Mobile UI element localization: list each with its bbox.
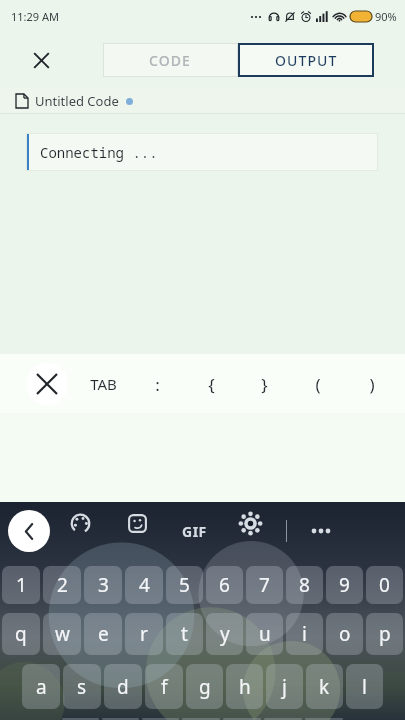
button[interactable]: Untitled Code <box>16 92 133 110</box>
button[interactable]: Themes <box>59 502 101 544</box>
staticText: a <box>36 674 47 700</box>
staticText: Untitled Code <box>35 92 119 110</box>
button[interactable]: ( <box>296 362 340 406</box>
button[interactable]: } <box>242 362 286 406</box>
staticText: q <box>15 621 27 647</box>
staticText: d <box>117 674 129 700</box>
staticText: GIF <box>182 522 207 541</box>
button[interactable]: i <box>286 613 323 655</box>
staticText: 1 <box>16 572 27 598</box>
staticText: TAB <box>90 374 117 394</box>
button[interactable]: u <box>246 613 283 655</box>
staticText: u <box>259 621 271 647</box>
staticText: f <box>161 674 168 700</box>
button[interactable]: GIF <box>173 510 215 552</box>
staticText: i <box>302 621 307 647</box>
staticText: ) <box>369 373 375 396</box>
staticText: p <box>379 621 391 647</box>
staticText: 8 <box>299 572 310 598</box>
button[interactable]: 3 <box>84 566 122 604</box>
button[interactable]: Hide toolbar <box>26 363 68 405</box>
staticText: y <box>220 621 230 647</box>
staticText: : <box>155 373 160 396</box>
staticText: OUTPUT <box>275 51 338 70</box>
button[interactable]: d <box>104 664 142 709</box>
button[interactable]: More options <box>301 510 343 552</box>
button[interactable]: CODE <box>103 43 238 77</box>
staticText: 0 <box>379 572 390 598</box>
staticText: CODE <box>149 51 192 70</box>
button[interactable]: r <box>125 613 163 655</box>
button[interactable]: 2 <box>43 566 81 604</box>
button[interactable]: m <box>305 718 343 720</box>
staticText: 6 <box>219 572 230 598</box>
button[interactable]: : <box>135 362 179 406</box>
button[interactable]: w <box>43 613 81 655</box>
button[interactable]: e <box>84 613 122 655</box>
button[interactable]: g <box>186 664 223 709</box>
button[interactable]: 6 <box>206 566 243 604</box>
staticText: 11:29 AM <box>11 9 59 24</box>
staticText: 2 <box>57 572 68 598</box>
staticText: 5 <box>179 572 190 598</box>
staticText: ( <box>315 373 321 396</box>
button[interactable]: 0 <box>366 566 403 604</box>
button[interactable]: TAB <box>81 362 125 406</box>
button[interactable]: ) <box>350 362 394 406</box>
staticText: j <box>282 674 287 700</box>
button[interactable]: 5 <box>166 566 203 604</box>
staticText: m <box>315 718 333 720</box>
button[interactable]: b <box>223 718 261 720</box>
staticText: o <box>339 621 351 647</box>
button[interactable]: y <box>206 613 243 655</box>
staticText: } <box>261 373 268 396</box>
staticText: e <box>98 621 109 647</box>
staticText: g <box>199 674 211 700</box>
button[interactable]: f <box>145 664 183 709</box>
button[interactable]: k <box>306 664 343 709</box>
button[interactable]: l <box>346 664 383 709</box>
button[interactable]: p <box>366 613 403 655</box>
button[interactable]: a <box>22 664 60 709</box>
staticText: 4 <box>139 572 150 598</box>
button[interactable]: Connecting ... <box>26 133 378 171</box>
staticText: 90% <box>375 9 397 24</box>
button[interactable]: 7 <box>246 566 283 604</box>
button[interactable]: c <box>142 718 179 720</box>
button[interactable]: o <box>326 613 363 655</box>
button[interactable]: 9 <box>326 566 363 604</box>
button[interactable]: Close <box>24 43 58 77</box>
button[interactable]: Stickers <box>116 502 158 544</box>
button[interactable]: 1 <box>2 566 40 604</box>
staticText: l <box>362 674 367 700</box>
button[interactable]: OUTPUT <box>238 43 374 77</box>
staticText: 7 <box>259 572 270 598</box>
button[interactable]: { <box>189 362 233 406</box>
staticText: { <box>208 373 215 396</box>
staticText: h <box>239 674 251 700</box>
staticText: 9 <box>339 572 350 598</box>
button[interactable]: Settings <box>229 502 271 544</box>
staticText: Connecting ... <box>40 143 158 162</box>
button[interactable]: 4 <box>125 566 163 604</box>
staticText: r <box>140 621 148 647</box>
button[interactable]: j <box>266 664 303 709</box>
button[interactable]: h <box>226 664 263 709</box>
staticText: k <box>319 674 330 700</box>
button[interactable]: 8 <box>286 566 323 604</box>
button[interactable]: q <box>2 613 40 655</box>
button[interactable]: Back <box>8 510 50 552</box>
button[interactable]: s <box>63 664 101 709</box>
staticText: w <box>55 621 70 647</box>
button[interactable]: t <box>166 613 203 655</box>
